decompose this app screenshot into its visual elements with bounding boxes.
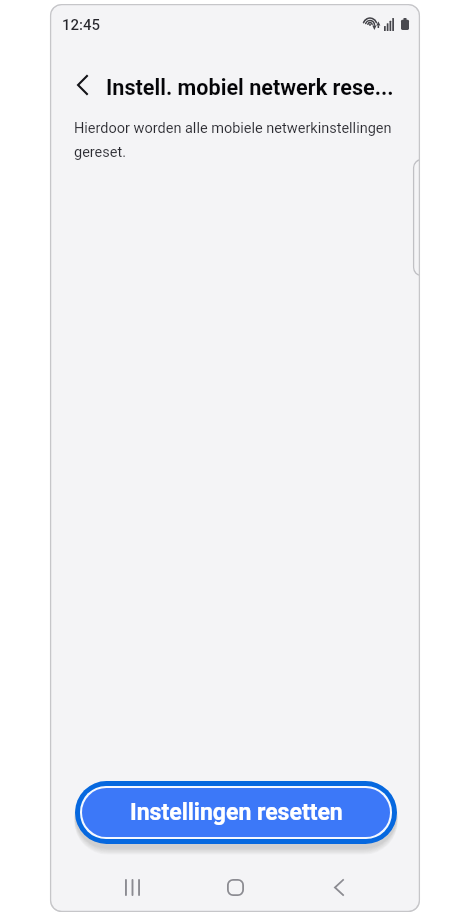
button[interactable]: Back xyxy=(316,866,362,908)
button[interactable]: Recent apps xyxy=(109,866,155,908)
button[interactable]: Home xyxy=(212,866,258,908)
staticText: Instell. mobiel netwerk rese... xyxy=(106,75,394,100)
staticText: Hierdoor worden alle mobiele netwerkinst… xyxy=(74,120,396,160)
staticText: Instellingen resetten xyxy=(130,799,343,826)
staticText: 12:45 xyxy=(62,16,101,34)
button[interactable]: Instellingen resetten xyxy=(82,788,390,837)
button[interactable]: Back xyxy=(65,66,99,104)
